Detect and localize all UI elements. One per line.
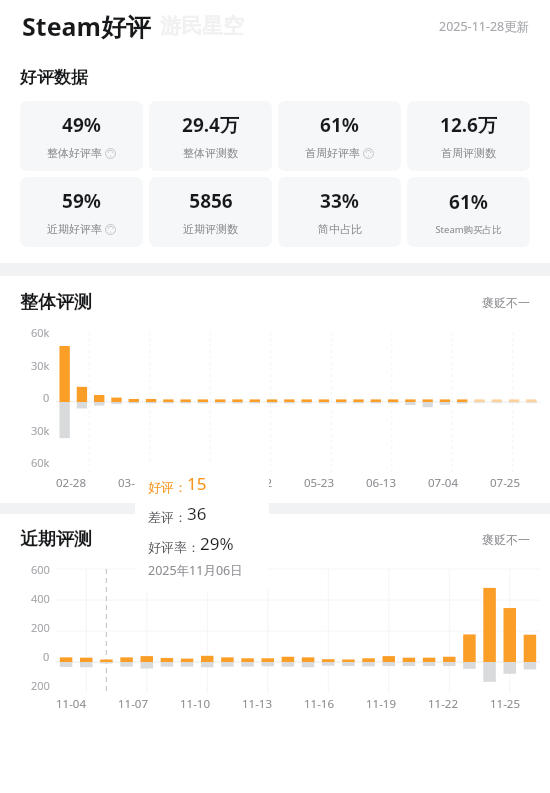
button[interactable]: 29.4万	[149, 101, 272, 171]
staticText: 200	[31, 620, 50, 635]
staticText: 30k	[31, 358, 50, 373]
staticText: 游民星空	[160, 13, 244, 39]
staticText: 04-11	[180, 475, 211, 491]
staticText: 11-10	[180, 696, 211, 712]
staticText: 2025年11月06日	[148, 562, 243, 579]
staticText: 首周好评率	[305, 146, 360, 160]
staticText: 400	[31, 591, 50, 606]
staticText: 简中占比	[318, 222, 362, 236]
staticText: 11-19	[366, 696, 397, 712]
staticText: 06-13	[366, 475, 397, 491]
staticText: 首周评测数	[441, 146, 496, 160]
staticText: 07-25	[490, 475, 521, 491]
other: Help	[105, 148, 116, 159]
staticText: 0	[43, 649, 50, 664]
staticText: Steam购买占比	[435, 223, 502, 236]
staticText: 整体评测	[20, 291, 92, 314]
staticText: 61%	[320, 112, 359, 138]
staticText: Steam好评	[22, 9, 151, 43]
button[interactable]: 49%	[20, 101, 143, 171]
staticText: 49%	[62, 112, 101, 138]
other: Help	[105, 224, 116, 235]
staticText: 61%	[449, 189, 488, 215]
staticText: 05-02	[242, 475, 273, 491]
staticText: 600	[31, 562, 50, 577]
staticText: 5856	[189, 188, 233, 214]
button[interactable]: 5856	[149, 177, 272, 247]
staticText: 29%	[200, 532, 234, 555]
staticText: 29.4万	[182, 112, 239, 138]
staticText: 好评率：	[148, 539, 200, 555]
staticText: 03-21	[118, 475, 149, 491]
staticText: 褒贬不一	[482, 532, 530, 547]
staticText: 11-13	[242, 696, 273, 712]
staticText: 11-16	[304, 696, 335, 712]
staticText: 近期评测数	[183, 222, 238, 236]
staticText: 05-23	[304, 475, 335, 491]
staticText: 褒贬不一	[482, 295, 530, 310]
staticText: 整体评测数	[183, 146, 238, 160]
staticText: 33%	[320, 188, 359, 214]
staticText: 36	[187, 502, 207, 525]
staticText: 11-25	[490, 696, 521, 712]
button[interactable]: 12.6万	[407, 101, 530, 171]
staticText: 02-28	[56, 475, 87, 491]
button[interactable]: 59%	[20, 177, 143, 247]
button[interactable]: 61%	[278, 101, 401, 171]
staticText: 0	[43, 390, 50, 405]
staticText: 12.6万	[440, 112, 497, 138]
staticText: 07-04	[428, 475, 459, 491]
staticText: 近期好评率	[47, 222, 102, 236]
other: Help	[363, 148, 374, 159]
staticText: 11-07	[118, 696, 149, 712]
staticText: 200	[31, 678, 50, 693]
staticText: 59%	[62, 188, 101, 214]
button[interactable]: 61%	[407, 177, 530, 247]
staticText: 60k	[31, 455, 50, 470]
staticText: 15	[187, 472, 207, 495]
staticText: 差评：	[148, 509, 187, 525]
staticText: 60k	[31, 325, 50, 340]
button[interactable]: 好评：	[135, 462, 269, 591]
staticText: 好评数据	[20, 67, 88, 88]
staticText: 好评：	[148, 479, 187, 495]
button[interactable]: 33%	[278, 177, 401, 247]
staticText: 整体好评率	[47, 146, 102, 160]
staticText: 近期评测	[20, 528, 92, 551]
staticText: 2025-11-28更新	[439, 18, 530, 35]
staticText: 11-04	[56, 696, 87, 712]
staticText: 30k	[31, 423, 50, 438]
staticText: 11-22	[428, 696, 459, 712]
